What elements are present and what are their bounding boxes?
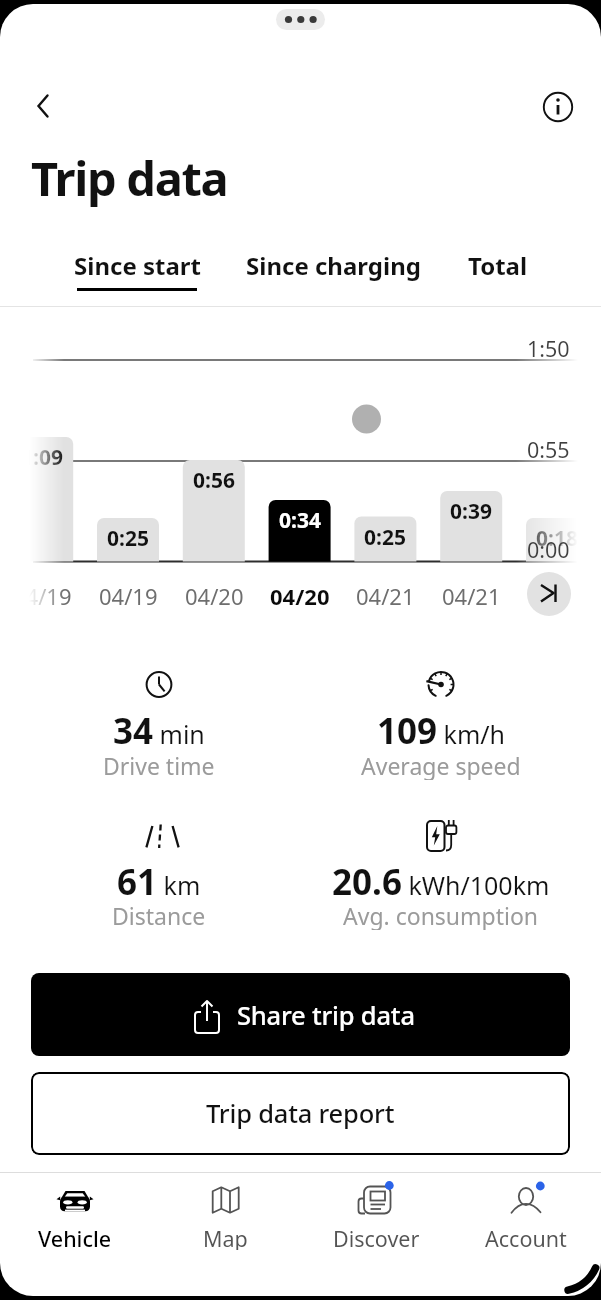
staticText: 0:25 xyxy=(364,523,406,546)
button[interactable] xyxy=(160,1176,290,1266)
staticText: 04/20 xyxy=(185,581,244,605)
button[interactable] xyxy=(527,572,571,616)
staticText: 04/21 xyxy=(442,581,501,605)
staticText: Account xyxy=(485,1224,567,1250)
button[interactable]: Share trip data xyxy=(31,973,570,1056)
staticText: 0:34 xyxy=(279,506,321,529)
staticText: Vehicle xyxy=(38,1224,112,1250)
staticText: 0:39 xyxy=(450,497,492,520)
staticText: 1:50 xyxy=(527,334,570,358)
button[interactable]: Trip data report xyxy=(31,1072,570,1155)
staticText: 1:09 xyxy=(21,443,63,466)
staticText: 0:55 xyxy=(527,435,570,459)
button[interactable] xyxy=(461,1176,591,1266)
button[interactable] xyxy=(538,87,578,127)
staticText: 04/20 xyxy=(270,581,330,605)
button[interactable] xyxy=(60,244,210,294)
staticText: 34 min xyxy=(113,707,205,749)
button[interactable] xyxy=(10,1176,140,1266)
staticText: 61 km xyxy=(117,858,201,900)
staticText: Trip data report xyxy=(206,1096,395,1131)
staticText: 0:00 xyxy=(527,535,570,559)
staticText: 109 km/h xyxy=(377,707,506,749)
staticText: 04/19 xyxy=(99,581,158,605)
staticText: 0:18 xyxy=(536,524,578,547)
staticText: Since charging xyxy=(246,249,421,282)
staticText: Average speed xyxy=(361,750,521,780)
staticText: 04/19 xyxy=(13,581,72,605)
staticText: Total xyxy=(468,249,528,282)
staticText: Avg. consumption xyxy=(343,900,539,930)
staticText: Drive time xyxy=(103,750,215,780)
staticText: Map xyxy=(203,1224,248,1250)
button[interactable] xyxy=(455,244,545,294)
staticText: 04/21 xyxy=(356,581,415,605)
button[interactable] xyxy=(311,1176,441,1266)
button[interactable] xyxy=(24,86,64,126)
staticText: Trip data xyxy=(31,146,228,210)
staticText: Since start xyxy=(74,249,201,282)
staticText: 0:56 xyxy=(193,466,235,489)
staticText: Share trip data xyxy=(237,998,415,1033)
staticText: Discover xyxy=(333,1224,420,1250)
staticText: Distance xyxy=(112,900,206,930)
staticText: 0:25 xyxy=(107,524,149,547)
button[interactable] xyxy=(240,244,425,294)
staticText: 20.6 kWh/100km xyxy=(332,858,550,900)
